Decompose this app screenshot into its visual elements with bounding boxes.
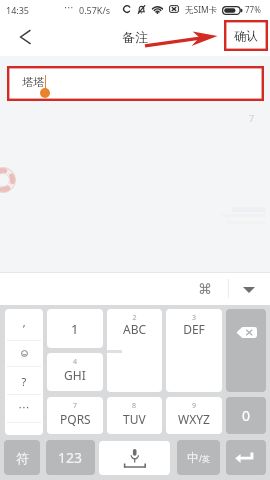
- button[interactable]: 1: [47, 309, 103, 348]
- button[interactable]: Input options: [190, 276, 219, 301]
- staticText: 4: [73, 357, 78, 367]
- staticText: ABC: [107, 321, 162, 337]
- button[interactable]: 0: [226, 397, 266, 434]
- button[interactable]: 8: [107, 397, 162, 434]
- staticText: 确认: [234, 28, 258, 43]
- button[interactable]: Back: [0, 18, 44, 56]
- other: Voice input: [123, 444, 147, 470]
- button[interactable]: 2: [107, 309, 162, 392]
- staticText: 0.57K/s: [79, 4, 111, 16]
- staticText: 123: [58, 448, 83, 467]
- button[interactable]: 9: [166, 397, 222, 434]
- button[interactable]: 4: [47, 353, 103, 391]
- staticText: TUV: [123, 411, 146, 427]
- staticText: 无SIM卡: [185, 4, 218, 16]
- other: Enter: [235, 452, 255, 464]
- staticText: PQRS: [60, 411, 91, 427]
- button[interactable]: Hide keyboard: [237, 276, 261, 301]
- staticText: ⌘: [198, 281, 212, 297]
- staticText: 2: [107, 313, 162, 323]
- staticText: 中: [187, 450, 199, 465]
- staticText: 14:35: [6, 4, 30, 16]
- staticText: GHI: [64, 367, 86, 383]
- staticText: /英: [199, 453, 210, 464]
- button[interactable]: 3: [166, 309, 222, 392]
- staticText: WXYZ: [178, 411, 210, 427]
- staticText: 77%: [245, 4, 261, 15]
- staticText: 塔塔: [22, 75, 44, 89]
- staticText: ⋯: [64, 2, 74, 14]
- button[interactable]: ’: [5, 309, 43, 435]
- staticText: 符: [16, 450, 29, 466]
- staticText: 9: [192, 401, 197, 411]
- staticText: 7: [249, 112, 255, 124]
- button[interactable]: 确认: [226, 22, 265, 48]
- button[interactable]: Backspace: [226, 309, 266, 392]
- button[interactable]: Enter: [226, 440, 266, 475]
- button[interactable]: 中: [177, 440, 220, 475]
- button[interactable]: Voice input: [99, 441, 170, 475]
- other: Backspace: [236, 327, 257, 338]
- staticText: DEF: [166, 321, 222, 337]
- staticText: 8: [132, 401, 137, 411]
- staticText: 0: [242, 406, 251, 425]
- staticText: ?: [5, 374, 43, 389]
- staticText: 备注: [122, 29, 148, 45]
- button[interactable]: 符: [4, 440, 40, 475]
- staticText: ⋯: [5, 401, 43, 414]
- button[interactable]: 123: [46, 440, 95, 475]
- staticText: 1: [71, 320, 79, 338]
- staticText: ’: [5, 321, 43, 336]
- button[interactable]: 7: [47, 397, 103, 434]
- staticText: 3: [166, 313, 222, 323]
- staticText: 7: [73, 401, 78, 411]
